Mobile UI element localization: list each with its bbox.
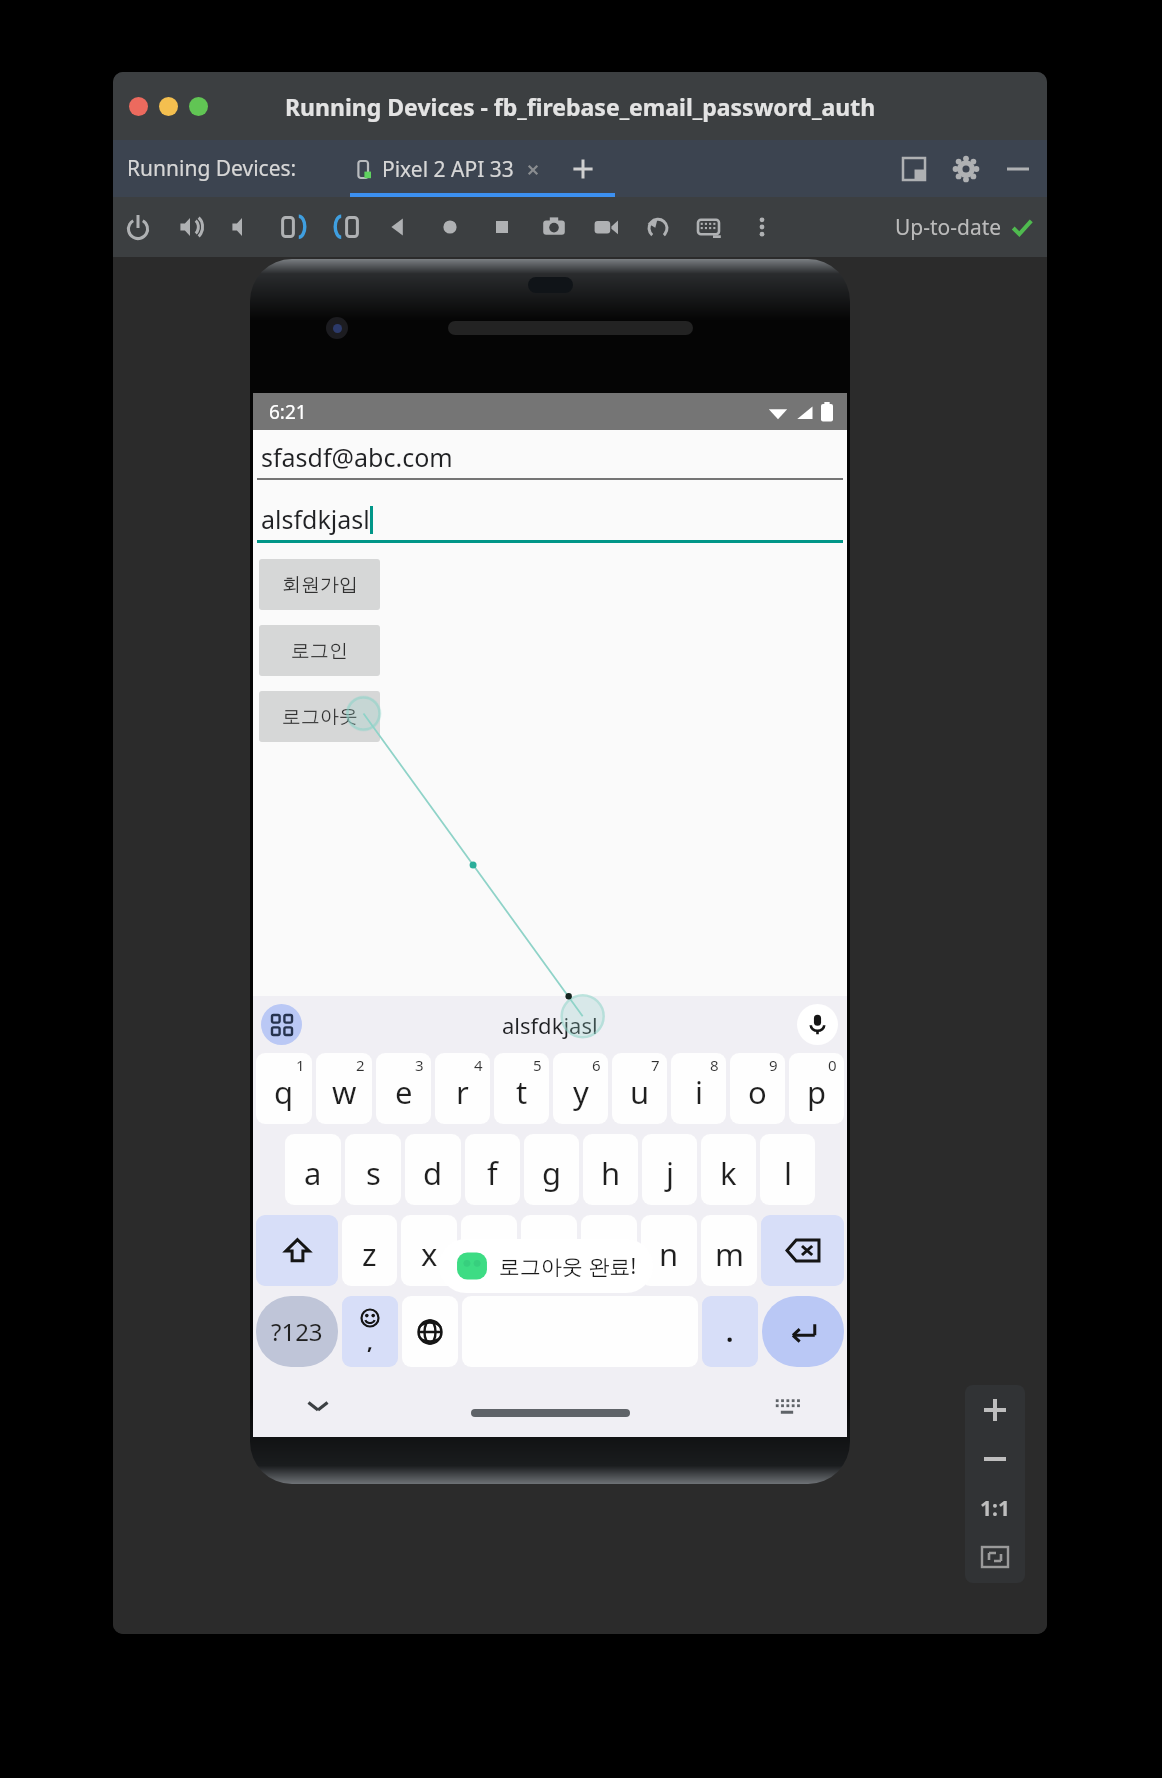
button[interactable]: l	[760, 1134, 815, 1205]
staticText: 7	[651, 1055, 660, 1075]
button[interactable]: History	[643, 212, 673, 242]
button[interactable]: q	[256, 1053, 312, 1124]
button[interactable]: Enter	[762, 1296, 844, 1367]
button[interactable]: Pixel 2 API 33	[350, 155, 546, 184]
button[interactable]: Backspace	[761, 1215, 844, 1286]
staticText: q	[274, 1071, 294, 1113]
button[interactable]: Hide keyboard	[301, 1389, 335, 1423]
staticText: y	[573, 1071, 589, 1113]
button[interactable]: Overview	[487, 212, 517, 242]
button[interactable]: Layout	[901, 156, 927, 182]
button[interactable]: .	[702, 1296, 758, 1367]
button[interactable]: Shift	[256, 1215, 338, 1286]
button[interactable]: Up-to-date	[895, 213, 1033, 242]
staticText: 5	[533, 1055, 542, 1075]
button[interactable]: Zoom out	[965, 1435, 1025, 1483]
staticText: u	[630, 1071, 650, 1113]
button[interactable]: p	[789, 1053, 844, 1124]
staticText: alsfdkjasl	[261, 502, 370, 536]
button[interactable]: 로그아웃	[259, 691, 380, 742]
button[interactable]: Back	[383, 212, 413, 242]
button[interactable]: Fit to screen	[965, 1533, 1025, 1581]
button[interactable]: s	[345, 1134, 401, 1205]
button[interactable]: Volume down	[227, 212, 257, 242]
button[interactable]: Rotate right	[331, 212, 361, 242]
button[interactable]: ?123	[256, 1296, 338, 1367]
button[interactable]: 회원가입	[259, 559, 380, 610]
staticText: e	[395, 1071, 413, 1113]
staticText: b	[599, 1233, 619, 1275]
button[interactable]: Screenshot	[539, 212, 569, 242]
staticText: t	[516, 1071, 528, 1113]
button[interactable]: 1:1	[965, 1483, 1025, 1533]
button[interactable]: t	[494, 1053, 549, 1124]
staticText: p	[807, 1071, 827, 1113]
staticText: Running Devices - fb_firebase_email_pass…	[285, 91, 876, 122]
button[interactable]: k	[701, 1134, 756, 1205]
button[interactable]	[189, 97, 208, 116]
button[interactable]: Record	[591, 212, 621, 242]
button[interactable]: 로그인	[259, 625, 380, 676]
staticText: ?123	[271, 1315, 323, 1348]
button[interactable]: More	[747, 212, 777, 242]
staticText: sfasdf@abc.com	[261, 440, 453, 474]
staticText: 6:21	[269, 399, 307, 425]
button[interactable]: r	[435, 1053, 490, 1124]
button[interactable]: Close tab	[524, 161, 542, 179]
staticText: 9	[769, 1055, 778, 1075]
button[interactable]: Keyboard	[695, 212, 725, 242]
staticText: c	[482, 1233, 497, 1275]
staticText: x	[421, 1233, 438, 1275]
button[interactable]: Switch keyboard	[773, 1392, 801, 1420]
staticText: d	[423, 1152, 443, 1194]
button[interactable]: o	[730, 1053, 785, 1124]
button[interactable]: u	[612, 1053, 667, 1124]
button[interactable]: Rotate left	[279, 212, 309, 242]
button[interactable]: j	[642, 1134, 697, 1205]
staticText: v	[541, 1233, 557, 1275]
button[interactable]: Voice input	[797, 1004, 838, 1045]
staticText: 8	[710, 1055, 719, 1075]
button[interactable]: h	[583, 1134, 638, 1205]
button[interactable]: Home	[435, 212, 465, 242]
button[interactable]: Change language	[402, 1296, 458, 1367]
button[interactable]	[159, 97, 178, 116]
button[interactable]	[129, 97, 148, 116]
button[interactable]: Toolbar	[261, 1004, 302, 1045]
staticText: 로그아웃	[282, 705, 358, 729]
button[interactable]: i	[671, 1053, 726, 1124]
button[interactable]: e	[376, 1053, 431, 1124]
staticText: k	[720, 1152, 737, 1194]
staticText: Running Devices:	[127, 154, 297, 183]
button[interactable]: z	[342, 1215, 397, 1286]
button[interactable]: y	[553, 1053, 608, 1124]
button[interactable]: n	[641, 1215, 697, 1286]
staticText: a	[304, 1152, 322, 1194]
button[interactable]: f	[465, 1134, 520, 1205]
staticText: j	[666, 1152, 674, 1194]
button[interactable]: m	[701, 1215, 757, 1286]
button[interactable]: b	[581, 1215, 637, 1286]
staticText: 2	[356, 1055, 365, 1075]
button[interactable]: a	[285, 1134, 341, 1205]
button[interactable]: c	[461, 1215, 517, 1286]
button[interactable]: Zoom in	[965, 1385, 1025, 1435]
staticText: .	[726, 1314, 734, 1349]
button[interactable]: g	[524, 1134, 579, 1205]
button[interactable]: Settings	[953, 156, 979, 182]
button[interactable]: Emoji	[342, 1296, 398, 1367]
button[interactable]: w	[316, 1053, 372, 1124]
button[interactable]: Power	[123, 212, 153, 242]
button[interactable]: Add device	[568, 154, 598, 184]
staticText: 1	[296, 1055, 305, 1075]
button[interactable]: Minimize	[1005, 156, 1031, 182]
staticText: 3	[415, 1055, 424, 1075]
staticText: 회원가입	[282, 573, 358, 597]
staticText: ,	[367, 1328, 373, 1355]
button[interactable]: Volume up	[175, 212, 205, 242]
staticText: alsfdkjasl	[502, 1010, 598, 1040]
button[interactable]: x	[401, 1215, 457, 1286]
button[interactable]: d	[405, 1134, 461, 1205]
button[interactable]: v	[521, 1215, 577, 1286]
